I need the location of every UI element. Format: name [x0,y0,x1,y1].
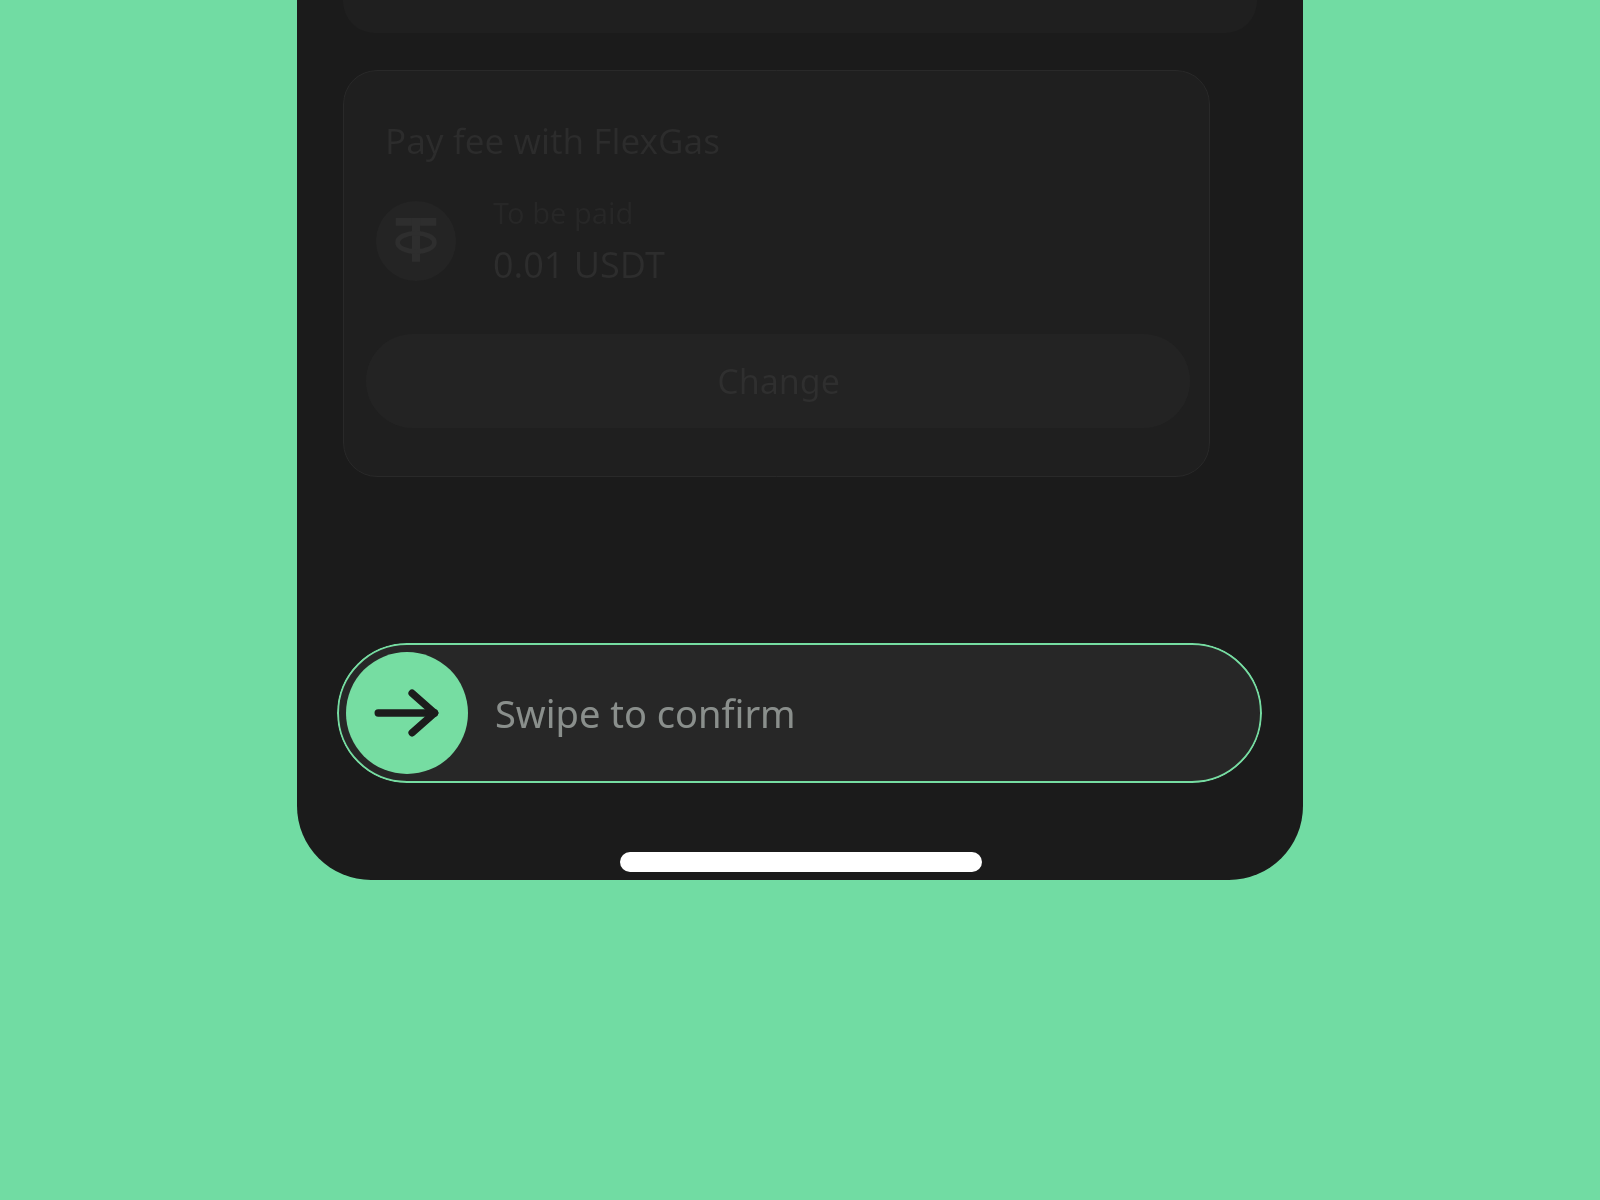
staticText: Change [717,358,840,404]
button[interactable]: Swipe to confirm [337,643,1262,783]
staticText: Pay fee with FlexGas [385,117,720,165]
staticText: Swipe to confirm [495,687,796,739]
staticText: 0.01 USDT [493,240,666,289]
other: Swipe to confirm [346,652,468,774]
